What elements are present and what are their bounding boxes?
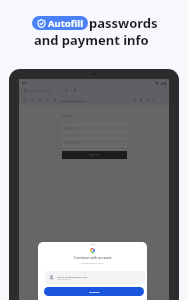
button[interactable] — [21, 87, 51, 94]
button[interactable]: Autofill — [32, 16, 88, 30]
staticText: Sign in — [89, 153, 100, 157]
staticText: passwords — [89, 14, 158, 32]
staticText: Password — [65, 141, 80, 145]
button[interactable]: New tab — [65, 89, 68, 92]
button[interactable]: Sign in — [62, 151, 127, 159]
button[interactable]: Email — [62, 124, 127, 133]
staticText: Sign in — [62, 113, 73, 118]
staticText: usedfamilygroup.com — [81, 262, 104, 265]
button[interactable]: Bookmark — [133, 98, 136, 101]
staticText: Continue — [89, 290, 100, 293]
button[interactable]: Password — [62, 138, 127, 147]
button[interactable]: Continue — [44, 287, 144, 296]
button[interactable]: alisa.g.beckett@gmail.com — [45, 271, 145, 284]
button[interactable]: Profile — [146, 98, 149, 101]
staticText: alisa.g.beckett@gmail.com — [57, 275, 88, 278]
staticText: Autofill — [48, 17, 83, 30]
staticText: Email — [65, 127, 74, 131]
staticText: Continue with account — [74, 255, 112, 260]
staticText: and payment info — [34, 31, 149, 49]
